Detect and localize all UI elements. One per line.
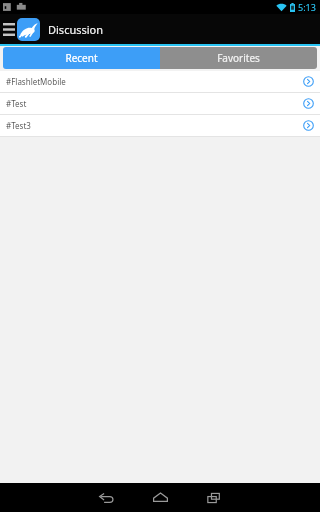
staticText: 5:13 bbox=[298, 1, 316, 13]
staticText: Favorites bbox=[217, 51, 260, 65]
staticText: #FlashletMobile bbox=[6, 76, 303, 87]
staticText: Discussion bbox=[48, 22, 104, 37]
button[interactable]: Favorites bbox=[160, 47, 317, 69]
button[interactable]: Recent apps bbox=[188, 483, 240, 512]
button[interactable]: Back bbox=[80, 483, 132, 512]
button[interactable]: #FlashletMobile bbox=[0, 71, 320, 92]
button[interactable]: #Test bbox=[0, 93, 320, 114]
button[interactable]: Recent bbox=[3, 47, 160, 69]
staticText: #Test bbox=[6, 98, 303, 109]
button[interactable]: Home bbox=[134, 483, 186, 512]
staticText: #Test3 bbox=[6, 120, 303, 131]
button[interactable]: Flashlet logo bbox=[17, 18, 40, 41]
button[interactable]: #Test3 bbox=[0, 115, 320, 136]
staticText: Recent bbox=[65, 51, 98, 65]
button[interactable]: Open navigation drawer bbox=[0, 14, 17, 44]
